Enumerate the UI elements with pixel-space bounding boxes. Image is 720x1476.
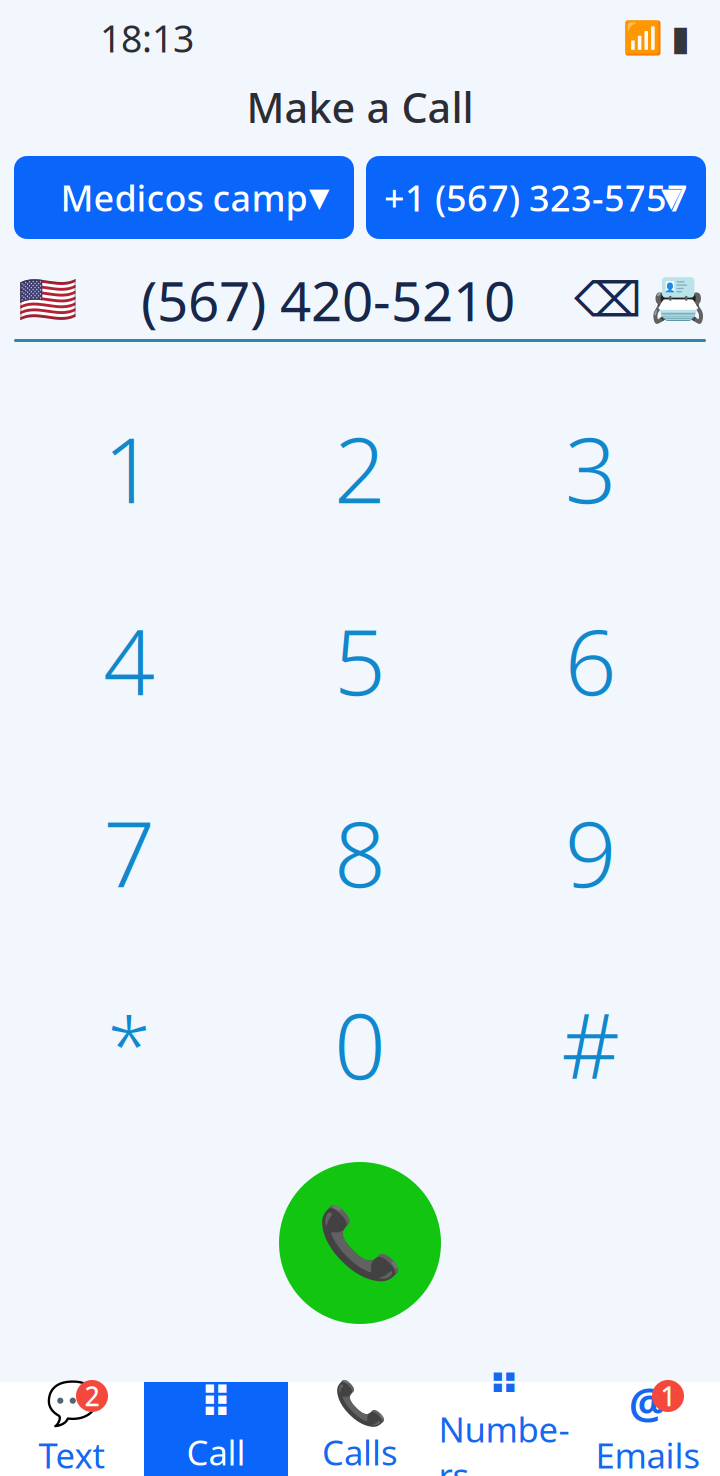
staticText: 0 [334,984,386,1104]
button[interactable]: Call [279,1162,441,1324]
staticText: ⠿ [199,1379,232,1427]
staticText: Call [186,1429,245,1475]
staticText: 18:13 [100,13,194,63]
button[interactable]: Contacts [646,264,710,336]
staticText: 1 [103,408,155,528]
staticText: (567) 420-5210 [141,264,515,336]
staticText: # [561,984,620,1104]
button[interactable]: @ [576,1382,720,1476]
button[interactable]: 8 [245,756,475,948]
staticText: ⠶ [487,1356,520,1404]
staticText: * [108,993,151,1095]
staticText: 🇺🇸 [18,273,78,327]
button[interactable]: * [14,948,245,1140]
staticText: ▮ [671,18,690,58]
button[interactable]: 2 [245,372,475,564]
staticText: Medicos camp [60,174,307,221]
staticText: ⌫ [574,273,642,327]
staticText: 📶 [623,20,663,56]
staticText: ▼ [309,182,330,213]
button[interactable]: Medicos camp [14,156,354,239]
button[interactable]: 9 [475,756,706,948]
button[interactable]: 5 [245,564,475,756]
button[interactable]: ⠿ [144,1382,288,1476]
button[interactable]: 4 [14,564,245,756]
staticText: 7 [103,792,155,912]
staticText: 5 [334,600,386,720]
staticText: 💬 [45,1379,98,1427]
staticText: Numbers [438,1406,569,1476]
staticText: +1 (567) 323-5757 [384,174,688,221]
staticText: 9 [565,792,617,912]
button[interactable]: 1 [14,372,245,564]
staticText: 📇 [650,274,706,326]
staticText: Emails [595,1432,700,1476]
staticText: 📞 [333,1379,386,1427]
staticText: 📞 [317,1203,403,1283]
button[interactable]: 0 [245,948,475,1140]
staticText: 6 [565,600,617,720]
staticText: 3 [565,408,617,528]
staticText: 8 [334,792,386,912]
staticText: 2 [84,1378,99,1414]
staticText: ▼ [661,182,682,213]
staticText: @ [629,1375,667,1431]
staticText: 1 [660,1378,675,1414]
button[interactable]: ⠶ [432,1382,576,1476]
staticText: Text [38,1432,105,1476]
button[interactable]: 6 [475,564,706,756]
button[interactable]: 7 [14,756,245,948]
staticText: Calls [322,1429,398,1475]
button[interactable]: # [475,948,706,1140]
button[interactable]: +1 (567) 323-5757 [366,156,706,239]
button[interactable]: Country [10,264,86,336]
staticText: 4 [103,600,155,720]
staticText: Make a Call [246,80,473,134]
button[interactable]: 💬 [0,1382,144,1476]
button[interactable]: Backspace [570,264,646,336]
staticText: 2 [334,408,386,528]
button[interactable]: 3 [475,372,706,564]
button[interactable]: 📞 [288,1382,432,1476]
